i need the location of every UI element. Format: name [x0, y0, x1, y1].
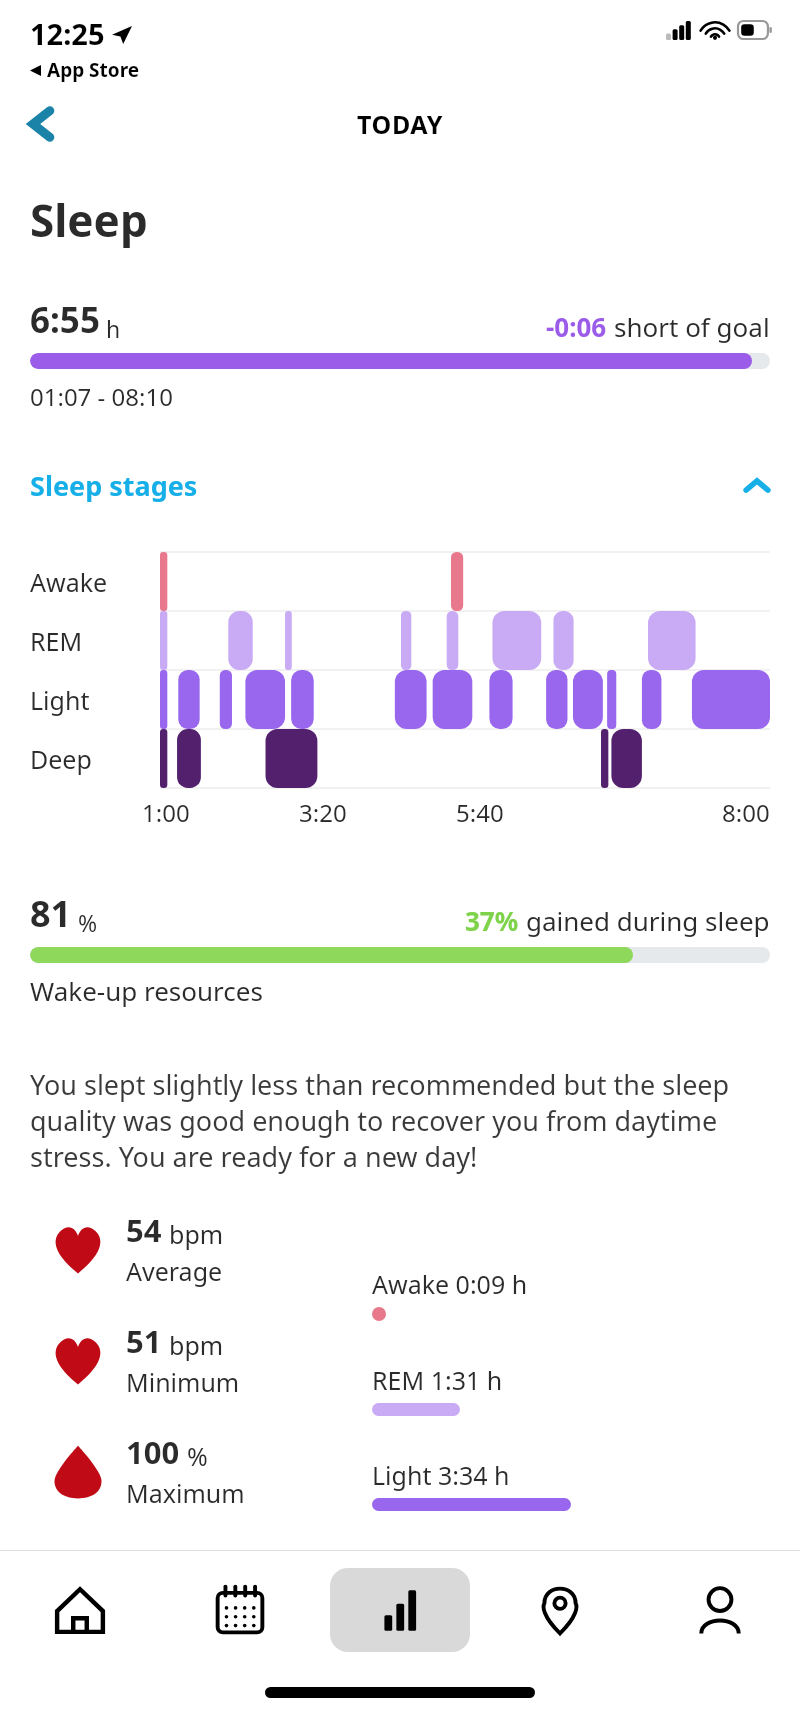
staticText: Sleep — [30, 190, 148, 250]
button[interactable]: Sleep stages — [30, 467, 770, 504]
staticText: % — [187, 1439, 208, 1473]
staticText: 5:40 — [456, 796, 504, 829]
staticText: 6:55 — [30, 296, 100, 344]
staticText: h — [106, 313, 121, 344]
staticText: 1:00 — [142, 796, 190, 829]
staticText: % — [78, 907, 98, 938]
staticText: Average — [126, 1254, 223, 1288]
staticText: Awake — [30, 565, 108, 599]
staticText: Minimum — [126, 1365, 240, 1399]
staticText: 8:00 — [722, 796, 770, 829]
staticText: Sleep stages — [30, 467, 198, 504]
staticText: REM — [30, 624, 83, 658]
staticText: 01:07 - 08:10 — [30, 380, 173, 413]
staticText: TODAY — [357, 107, 443, 141]
button[interactable]: Profile — [650, 1568, 790, 1652]
staticText: 3:20 — [299, 796, 347, 829]
staticText: You slept slightly less than recommended… — [30, 1066, 770, 1175]
staticText: REM 1:31 h — [372, 1363, 503, 1397]
staticText: 37% — [465, 903, 519, 938]
staticText: 51 — [126, 1320, 162, 1362]
staticText: 81 — [30, 889, 72, 938]
staticText: Light — [30, 683, 90, 717]
staticText: 100 — [126, 1431, 180, 1473]
staticText: bpm — [169, 1217, 224, 1251]
button[interactable]: Statistics — [330, 1568, 470, 1652]
staticText: short of goal — [614, 309, 770, 344]
staticText: Maximum — [126, 1476, 245, 1510]
staticText: App Store — [47, 57, 140, 83]
staticText: bpm — [169, 1328, 224, 1362]
staticText: 54 — [126, 1209, 162, 1251]
staticText: 12:25 — [30, 14, 105, 53]
staticText: gained during sleep — [526, 903, 770, 938]
button[interactable]: Home — [10, 1568, 150, 1652]
staticText: Wake-up resources — [30, 973, 263, 1008]
staticText: Awake 0:09 h — [372, 1267, 528, 1301]
button[interactable]: Back — [14, 96, 70, 152]
staticText: -0:06 — [546, 309, 607, 344]
button[interactable]: Places — [490, 1568, 630, 1652]
staticText: Deep — [30, 742, 92, 776]
staticText: Light 3:34 h — [372, 1458, 510, 1492]
button[interactable]: Calendar — [170, 1568, 310, 1652]
